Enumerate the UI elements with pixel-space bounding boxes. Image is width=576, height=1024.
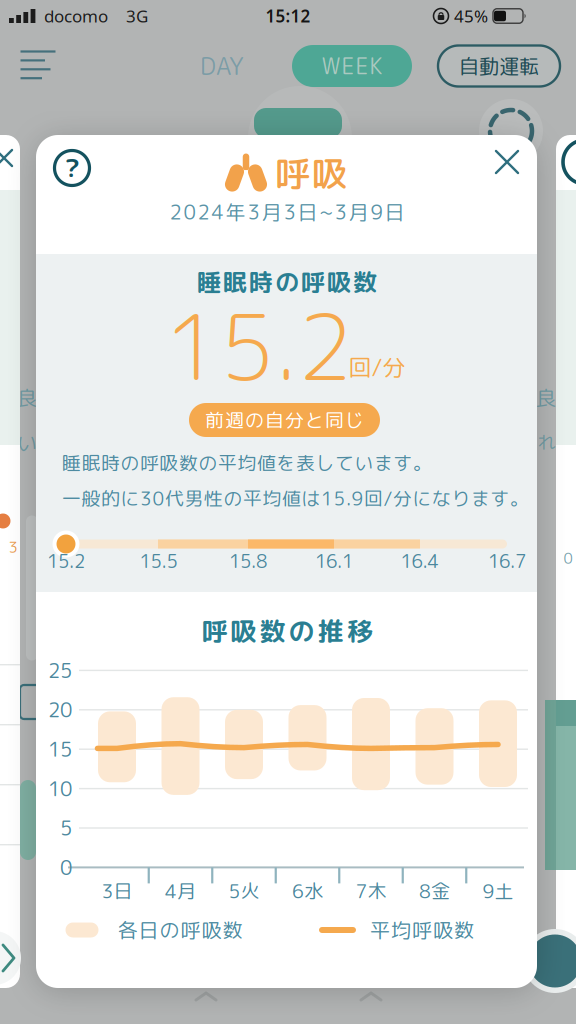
staticText: 良 [17, 384, 37, 412]
staticText: 16.4 [400, 548, 438, 574]
staticText: 3日 [101, 878, 132, 904]
staticText: 2024年3月3日~3月9日 [169, 198, 404, 226]
staticText: 3 [8, 536, 17, 557]
button[interactable]: Next [528, 934, 576, 987]
staticText: 睡眠時の呼吸数の平均値を表しています。 [62, 450, 432, 476]
staticText: 各日の呼吸数 [117, 916, 242, 944]
staticText: 45% [454, 4, 488, 28]
staticText: 良 [536, 384, 556, 412]
staticText: 7木 [355, 878, 386, 904]
staticText: 0 [563, 547, 572, 568]
staticText: DAY [200, 49, 244, 83]
staticText: 5火 [228, 878, 259, 904]
button[interactable]: 自動運転 [438, 45, 560, 86]
staticText: 前週の自分と同じ [205, 407, 364, 433]
staticText: 16.7 [488, 548, 526, 574]
staticText: 4月 [165, 878, 196, 904]
staticText: 16.1 [315, 548, 353, 574]
staticText: 15:12 [265, 4, 310, 28]
staticText: 5 [60, 814, 72, 842]
staticText: ? [64, 151, 79, 185]
staticText: 回/分 [348, 351, 405, 383]
staticText: 自動運転 [459, 52, 539, 80]
staticText: 15.2 [47, 548, 85, 574]
button[interactable]: Menu [10, 42, 70, 88]
staticText: れ [538, 429, 556, 454]
staticText: 8金 [419, 878, 450, 904]
staticText: 呼吸 [275, 149, 347, 197]
button[interactable]: Help [50, 146, 94, 190]
staticText: WEEK [321, 51, 382, 81]
button[interactable]: WEEK [292, 45, 412, 87]
button[interactable]: Close [485, 140, 529, 184]
staticText: 10 [48, 775, 72, 802]
staticText: 呼吸数の推移 [201, 613, 372, 649]
staticText: 6水 [292, 878, 323, 904]
staticText: 9土 [482, 878, 513, 904]
staticText: 15.8 [229, 548, 267, 574]
staticText: 25 [48, 656, 72, 684]
staticText: 0 [60, 853, 72, 881]
button[interactable]: Previous [0, 936, 22, 980]
staticText: 15 [48, 735, 72, 763]
staticText: 15.5 [139, 548, 177, 574]
staticText: 平均呼吸数 [370, 916, 474, 944]
staticText: い [17, 429, 37, 457]
staticText: 15.2 [165, 283, 353, 409]
staticText: docomo [44, 4, 108, 28]
staticText: 一般的に30代男性の平均値は15.9回/分になります。 [62, 485, 529, 512]
button[interactable]: DAY [200, 49, 244, 83]
staticText: 20 [48, 696, 72, 724]
staticText: 睡眠時の呼吸数 [197, 265, 377, 299]
staticText: 3G [126, 4, 148, 28]
